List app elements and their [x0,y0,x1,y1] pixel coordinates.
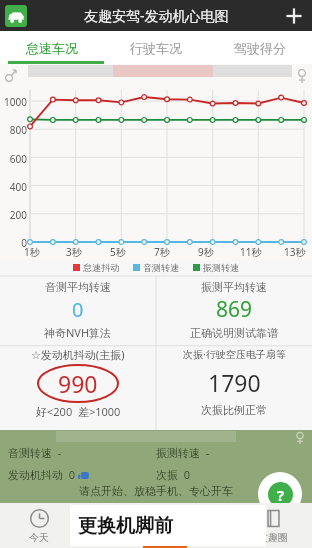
staticText: 次振 0 [156,467,191,482]
staticText: ☆发动机抖动(主振) [31,347,125,362]
button[interactable]: Add [276,0,312,31]
staticText: ? [277,485,285,505]
staticText: 0 [0,236,27,250]
staticText: 发动机抖动 0 [8,467,76,482]
staticText: 音测转速 [143,262,179,273]
staticText: 请点开始、放稳手机、专心开车 [79,484,233,498]
staticText: 400 [0,180,27,194]
button[interactable]: 更换机脚前 [70,505,266,546]
staticText: 200 [0,208,27,222]
staticText: 友趣圈 [258,531,288,544]
staticText: 怠速车况 [26,40,78,56]
button[interactable]: Today [0,503,78,548]
staticText: 1秒 [24,245,40,259]
staticText: 音测平均转速 [45,280,111,294]
button[interactable]: Start [156,503,234,548]
staticText: 9秒 [198,245,214,259]
staticText: 次振·行驶空压电子扇等 [183,347,286,361]
staticText: 音测转速 - [8,445,62,460]
staticText: 次振比例正常 [201,403,267,417]
staticText: 振测转速 - [156,445,210,460]
staticText: 990 [58,368,98,399]
staticText: 更换机脚前 [78,514,173,538]
staticText: 3秒 [66,245,82,259]
staticText: 神奇NVH算法 [44,325,112,340]
button[interactable]: 行驶车况 [104,31,208,64]
staticText: 怠速抖动 [83,262,119,273]
button[interactable]: 怠速车况 [0,31,104,64]
staticText: 7秒 [154,245,170,259]
staticText: 0 [72,296,84,323]
staticText: 行驶车况 [130,40,182,56]
staticText: 振测平均转速 [201,280,267,294]
staticText: 13秒 [284,245,306,259]
button[interactable]: Community [234,503,312,548]
staticText: 振测转速 [203,262,239,273]
button[interactable]: Help [258,472,302,516]
button[interactable]: 驾驶得分 [208,31,312,64]
staticText: 友趣安驾-发动机心电图 [84,6,229,25]
button[interactable]: App icon [5,5,27,27]
staticText: 5秒 [110,245,126,259]
staticText: 好<200 差>1000 [36,404,121,419]
staticText: 驾驶得分 [234,40,286,56]
staticText: 869 [216,295,253,324]
staticText: 正确说明测试靠谱 [190,326,278,340]
staticText: 今天 [29,531,49,544]
staticText: 1790 [208,367,261,398]
staticText: 600 [0,152,27,166]
staticText: 800 [0,123,27,137]
staticText: 11秒 [240,245,262,259]
button[interactable]: Records [78,503,156,548]
staticText: 1000 [0,95,27,109]
